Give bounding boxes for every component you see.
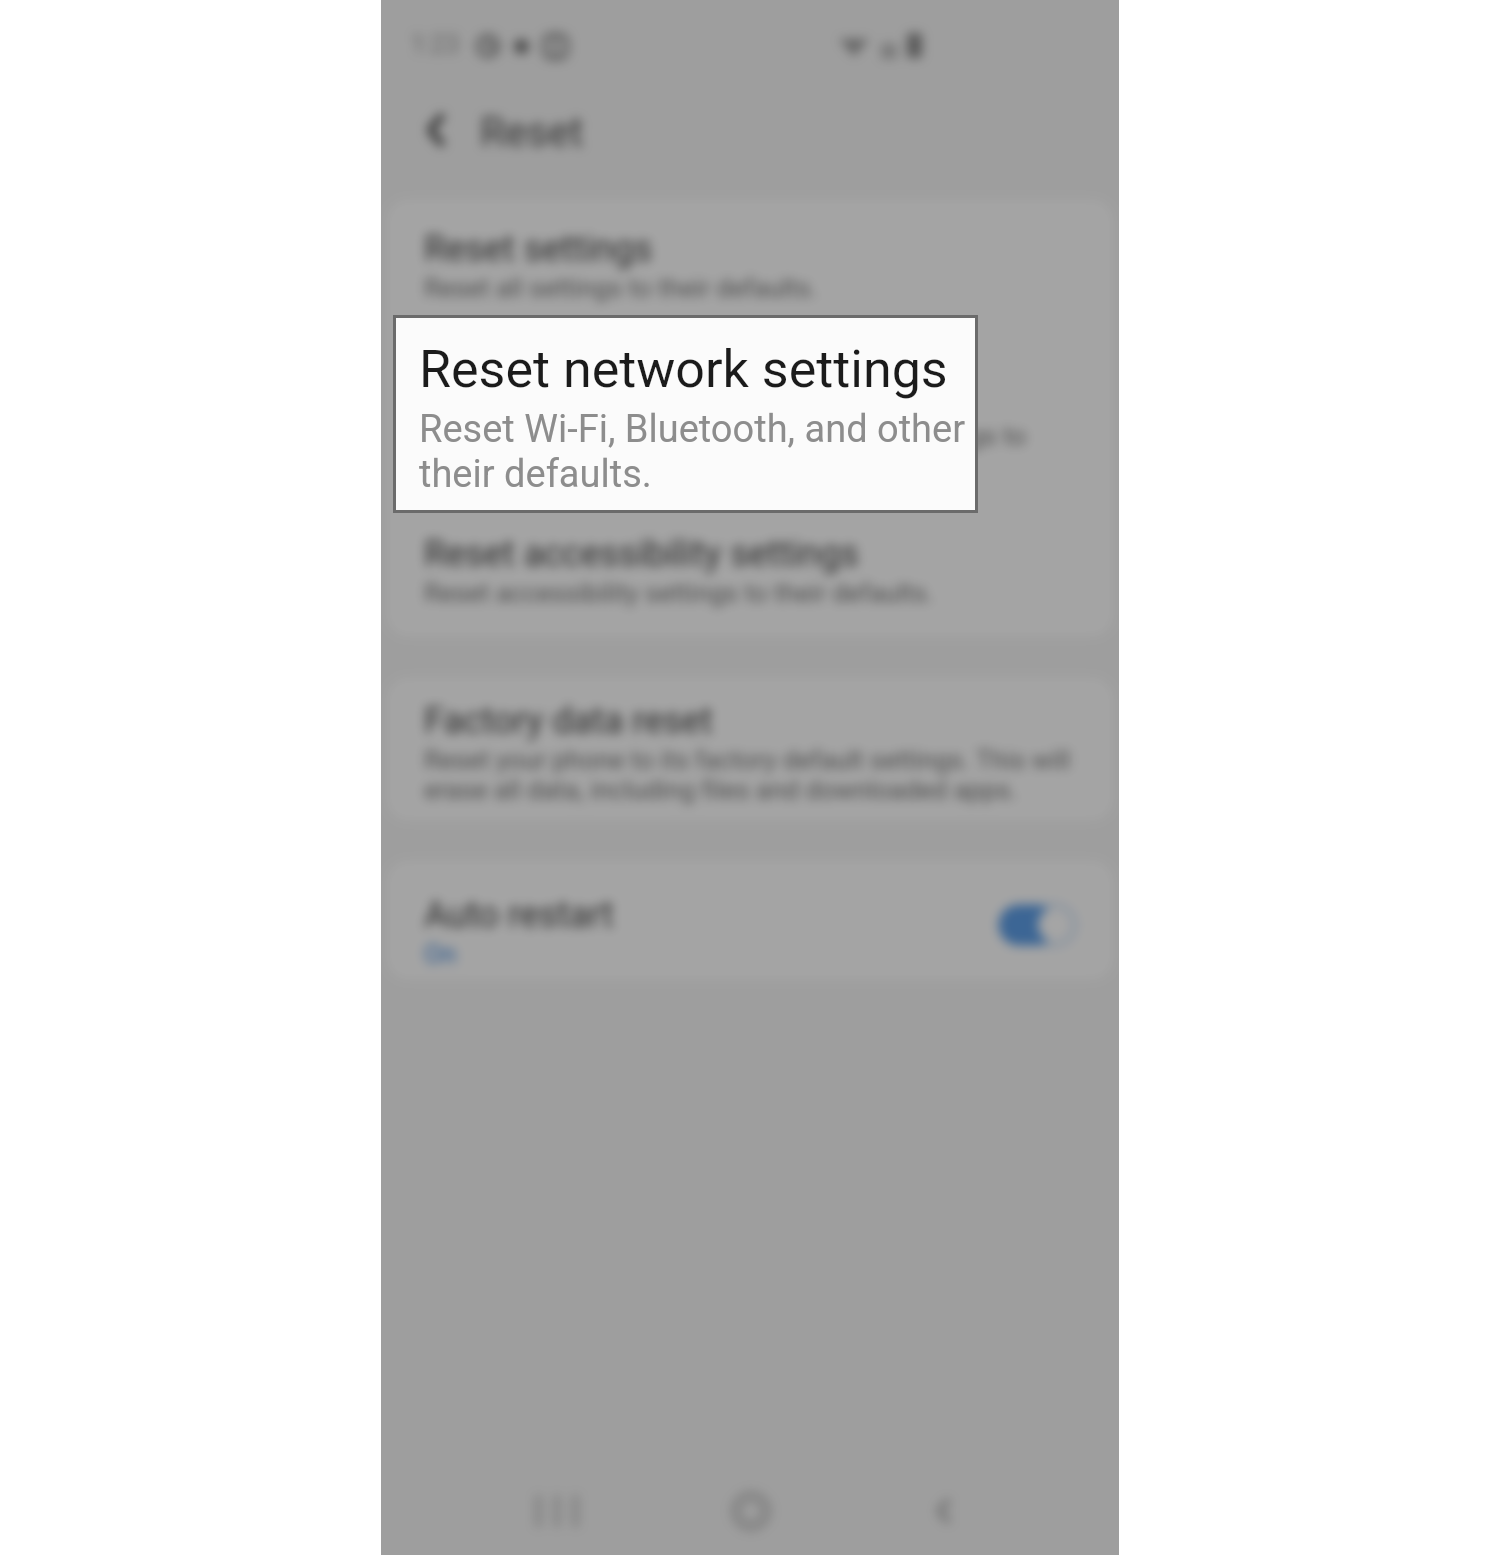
- staticText: Reset: [480, 108, 584, 156]
- button[interactable]: Home: [711, 1471, 791, 1551]
- staticText: Reset Wi-Fi, Bluetooth, and other networ…: [424, 421, 1026, 451]
- staticText: Reset network settings: [424, 376, 791, 418]
- staticText: Reset all settings to their defaults.: [424, 273, 818, 303]
- button[interactable]: Recent apps: [517, 1471, 597, 1551]
- staticText: Reset your phone to its factory default …: [424, 745, 1071, 775]
- staticText: 1:23: [411, 30, 460, 59]
- staticText: erase all data, including files and down…: [424, 775, 1018, 805]
- button[interactable]: Reset accessibility settings: [424, 533, 1084, 608]
- button[interactable]: Auto restart: [424, 894, 1084, 969]
- staticText: Factory data reset: [424, 700, 713, 742]
- button[interactable]: Back: [905, 1471, 985, 1551]
- staticText: Reset accessibility settings to their de…: [424, 578, 934, 608]
- staticText: their defaults.: [419, 452, 652, 497]
- button[interactable]: Reset network settings: [424, 376, 1084, 481]
- staticText: Reset settings: [424, 228, 653, 270]
- staticText: On: [424, 939, 457, 969]
- staticText: Auto restart: [424, 894, 614, 936]
- staticText: Reset accessibility settings: [424, 533, 859, 575]
- staticText: their defaults.: [424, 451, 584, 481]
- button[interactable]: Reset network settings: [396, 318, 975, 510]
- button[interactable]: Auto restart toggle: [997, 903, 1077, 947]
- staticText: Reset Wi-Fi, Bluetooth, and other networ…: [419, 407, 975, 452]
- button[interactable]: Reset settings: [424, 228, 1084, 303]
- button[interactable]: Navigate up: [407, 100, 467, 160]
- button[interactable]: Factory data reset: [424, 700, 1084, 805]
- staticText: Reset network settings: [419, 339, 948, 400]
